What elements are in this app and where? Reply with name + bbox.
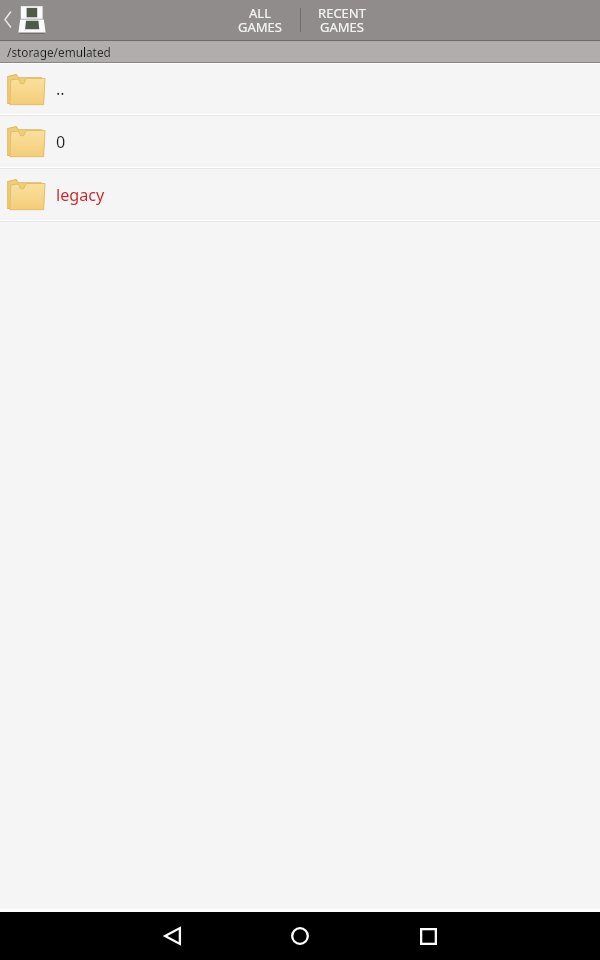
button[interactable]: legacy	[0, 169, 600, 222]
staticText: legacy	[56, 184, 105, 206]
button[interactable]: RECENT GAMES	[301, 0, 383, 40]
staticText: ..	[56, 78, 65, 100]
staticText: RECENT GAMES	[318, 4, 366, 36]
button[interactable]: ALL GAMES	[220, 0, 300, 40]
button[interactable]: Home	[236, 912, 364, 960]
staticText: 0	[56, 131, 66, 153]
staticText: ALL GAMES	[238, 4, 282, 36]
staticText: /storage/emulated	[7, 44, 111, 60]
button[interactable]: /storage/emulated	[0, 41, 600, 62]
button[interactable]: 0	[0, 116, 600, 169]
button[interactable]: Back	[108, 912, 236, 960]
button[interactable]: Back	[0, 0, 50, 40]
button[interactable]: ..	[0, 64, 600, 116]
button[interactable]: Recent apps	[364, 912, 492, 960]
